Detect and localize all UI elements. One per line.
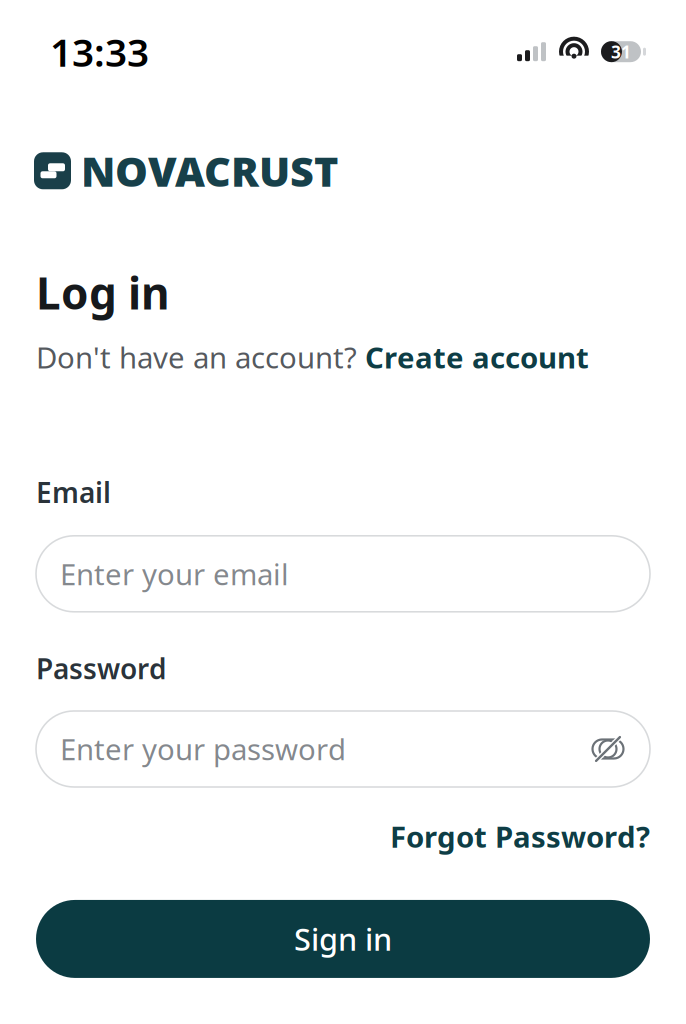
staticText: Enter your email — [60, 554, 289, 593]
button[interactable]: Sign in — [36, 900, 650, 978]
staticText: NOVACRUST — [81, 143, 338, 198]
button[interactable]: Create account — [365, 338, 589, 377]
staticText: Don't have an account? — [36, 338, 365, 377]
staticText: Email — [36, 474, 111, 511]
staticText: 13:33 — [50, 26, 149, 77]
staticText: 31 — [611, 40, 631, 63]
button[interactable]: Forgot Password? — [390, 817, 650, 856]
staticText: Enter your password — [60, 729, 346, 768]
staticText: Create account — [365, 338, 589, 377]
button[interactable]: Show password — [588, 729, 628, 769]
staticText: Password — [36, 650, 167, 687]
staticText: Forgot Password? — [390, 817, 650, 856]
staticText: Log in — [36, 263, 170, 322]
staticText: Sign in — [294, 919, 392, 959]
